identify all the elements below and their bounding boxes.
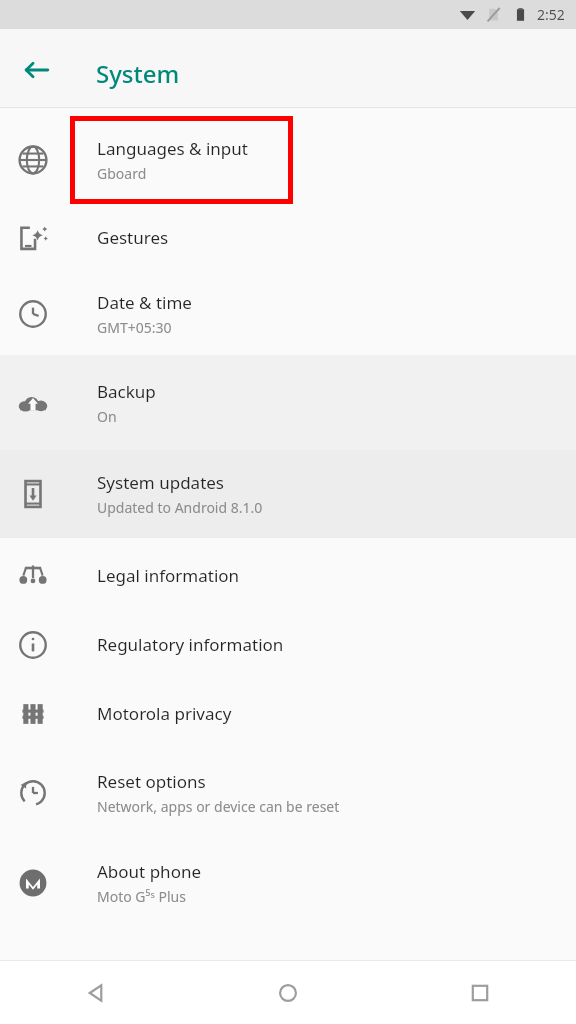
staticText: System updates bbox=[97, 471, 225, 494]
staticText: Legal information bbox=[97, 564, 240, 587]
button[interactable]: Reset options bbox=[0, 748, 576, 838]
button[interactable]: Navigate up bbox=[15, 48, 59, 92]
button[interactable]: System updates bbox=[0, 450, 576, 538]
button[interactable]: Back bbox=[0, 961, 192, 1024]
staticText: Gestures bbox=[97, 226, 169, 249]
button[interactable]: Gestures bbox=[0, 203, 576, 272]
staticText: Network, apps or device can be reset bbox=[97, 797, 340, 816]
staticText: Regulatory information bbox=[97, 633, 284, 656]
button[interactable]: Legal information bbox=[0, 541, 576, 610]
staticText: Gboard bbox=[97, 164, 147, 183]
staticText: About phone bbox=[97, 860, 202, 883]
staticText: Motorola privacy bbox=[97, 702, 232, 725]
button[interactable]: Regulatory information bbox=[0, 610, 576, 679]
staticText: 2:52 bbox=[537, 5, 565, 24]
button[interactable]: Languages & input bbox=[0, 117, 576, 203]
staticText: On bbox=[97, 407, 117, 426]
button[interactable]: Date & time bbox=[0, 272, 576, 355]
staticText: System bbox=[96, 57, 180, 90]
staticText: Updated to Android 8.1.0 bbox=[97, 498, 263, 517]
button[interactable]: Motorola privacy bbox=[0, 679, 576, 748]
button[interactable]: About phone bbox=[0, 838, 576, 928]
button[interactable]: Backup bbox=[0, 355, 576, 450]
staticText: GMT+05:30 bbox=[97, 318, 172, 337]
staticText: Moto G⁵ˢ Plus bbox=[97, 887, 186, 906]
button[interactable]: Home bbox=[192, 961, 384, 1024]
staticText: Backup bbox=[97, 380, 156, 403]
staticText: Reset options bbox=[97, 770, 206, 793]
staticText: Languages & input bbox=[97, 137, 248, 160]
button[interactable]: Recent apps bbox=[384, 961, 576, 1024]
staticText: Date & time bbox=[97, 291, 192, 314]
